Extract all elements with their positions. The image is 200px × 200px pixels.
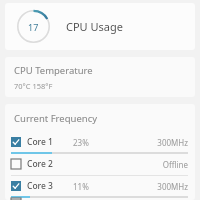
button[interactable]: 17 [5, 3, 195, 50]
staticText: 11% [73, 181, 117, 192]
staticText: CPU Temperature [14, 64, 93, 77]
other: Toggle Core 4 [11, 198, 21, 200]
button[interactable]: Toggle Core 3 [5, 176, 195, 198]
staticText: 17 [28, 21, 39, 33]
button[interactable]: Toggle Core 1 [5, 132, 195, 154]
staticText: 300MHz [157, 137, 188, 148]
button[interactable]: CPU Temperature [5, 57, 195, 97]
other: Toggle Core 2 [11, 159, 21, 169]
staticText: Core 1 [27, 136, 73, 148]
staticText: 23% [73, 137, 117, 148]
staticText: Core 3 [27, 180, 73, 192]
staticText: Core 2 [27, 158, 73, 170]
staticText: Current Frequency [14, 112, 98, 125]
staticText: Offline [162, 159, 188, 170]
button[interactable]: Toggle Core 4 [5, 198, 195, 200]
button[interactable]: Toggle Core 2 [5, 154, 195, 176]
staticText: CPU Usage [66, 19, 123, 34]
other: Toggle Core 1 [11, 137, 21, 147]
staticText: 300MHz [157, 181, 188, 192]
staticText: 70°C 158°F [14, 81, 53, 91]
other: Toggle Core 3 [11, 181, 21, 191]
